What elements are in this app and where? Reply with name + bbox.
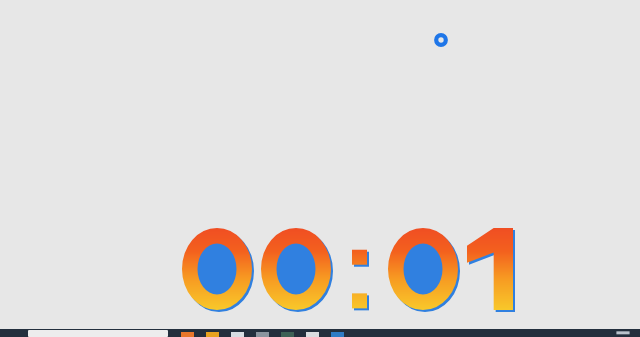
button[interactable]: Loading indicator (435, 34, 447, 46)
button[interactable]: Taskbar app (325, 329, 350, 337)
button[interactable]: Taskbar app (200, 329, 225, 337)
button[interactable]: Clock (612, 330, 634, 336)
button[interactable]: Taskbar app (275, 329, 300, 337)
button[interactable]: Taskbar app (300, 329, 325, 337)
button[interactable]: Taskbar app (175, 329, 200, 337)
button[interactable]: Search (28, 330, 168, 337)
button[interactable]: Taskbar app (250, 329, 275, 337)
button[interactable]: Taskbar app (225, 329, 250, 337)
